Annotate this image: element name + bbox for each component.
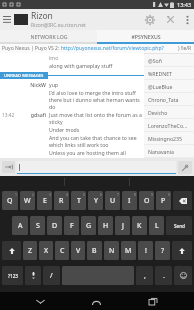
button[interactable]: 1	[2, 191, 18, 210]
button[interactable]: G	[81, 216, 96, 235]
button[interactable]: B	[87, 241, 102, 260]
button[interactable]: V	[71, 241, 85, 260]
staticText: Devicho	[148, 109, 168, 116]
button[interactable]: Send	[166, 216, 192, 235]
button[interactable]: ,	[136, 266, 153, 285]
button[interactable]: F	[64, 216, 79, 235]
button[interactable]: Missingno235	[144, 132, 194, 144]
staticText: L	[155, 221, 159, 231]
button[interactable]: 7	[105, 191, 120, 210]
button[interactable]: 2	[20, 191, 35, 210]
button[interactable]: N	[104, 241, 119, 260]
staticText: 9	[151, 192, 153, 197]
button[interactable]: D	[47, 216, 62, 235]
button[interactable]: L	[149, 216, 164, 235]
staticText: gdsafi	[22, 111, 46, 118]
button[interactable]: 3	[37, 191, 52, 210]
button[interactable]: Devicho	[144, 106, 194, 118]
staticText: @Soñ	[148, 57, 162, 64]
staticText: T	[77, 196, 81, 206]
staticText: Just move that list onto the forum as a	[49, 111, 142, 118]
button[interactable]: 8	[122, 191, 137, 210]
staticText: 2	[32, 192, 34, 197]
staticText: Chrono_Tata	[148, 96, 179, 103]
staticText: ?	[161, 246, 165, 256]
button[interactable]: ?123	[2, 266, 23, 285]
staticText: V	[76, 246, 81, 256]
button[interactable]: Nanavania	[144, 145, 194, 157]
button[interactable]: Close channel	[160, 9, 180, 30]
button[interactable]: 5	[71, 191, 86, 210]
button[interactable]: H	[98, 216, 113, 235]
button[interactable]: More options	[180, 9, 194, 30]
button[interactable]: Z	[23, 241, 37, 260]
button[interactable]: Shift	[2, 241, 21, 260]
button[interactable]: NETWORK LOG	[0, 30, 97, 42]
button[interactable]: Puyo Nexus | Puyo VS 2:	[0, 44, 194, 53]
button[interactable]: Emoji	[174, 266, 192, 285]
staticText: Rizon	[31, 10, 53, 22]
staticText: 6	[100, 192, 102, 197]
button[interactable]: 0	[156, 191, 171, 210]
button[interactable]: Channel settings	[140, 9, 160, 30]
button[interactable]: Home	[80, 292, 112, 310]
button[interactable]: Hide keyboard	[24, 292, 56, 310]
staticText: 4	[66, 192, 68, 197]
button[interactable]: .	[155, 266, 172, 285]
button[interactable]: @Soñ	[144, 54, 194, 66]
button[interactable]: J	[115, 216, 130, 235]
button[interactable]: X	[39, 241, 53, 260]
staticText: I	[128, 196, 131, 206]
staticText: U	[110, 196, 116, 206]
staticText: ) !le/R	[178, 45, 192, 52]
button[interactable]: Voice input	[25, 266, 41, 285]
button[interactable]: /	[43, 266, 60, 285]
button[interactable]: M	[121, 241, 136, 260]
staticText: 13:43	[177, 1, 192, 8]
button[interactable]: Shift	[172, 241, 192, 260]
staticText: !	[145, 246, 147, 256]
staticText: And you can take that chance to see	[49, 134, 137, 141]
staticText: J	[122, 221, 124, 231]
staticText: G	[86, 221, 92, 231]
button[interactable]: #PSYNEXUS	[97, 30, 194, 42]
button[interactable]: !	[138, 241, 153, 260]
button[interactable]: Open navigation drawer	[0, 9, 14, 30]
staticText: there but i dunno what hernan wants to	[49, 96, 143, 103]
staticText: #PSYNEXUS	[131, 33, 161, 40]
button[interactable]: S	[30, 216, 45, 235]
staticText: X	[44, 246, 49, 256]
button[interactable]: %REDNET	[144, 67, 194, 79]
button[interactable]: 9	[139, 191, 154, 210]
button[interactable]: Recent apps	[137, 292, 169, 310]
staticText: UNREAD MESSAGES	[4, 73, 44, 79]
button[interactable]: Tab complete	[2, 161, 15, 173]
button[interactable]: Attach	[178, 161, 192, 174]
button[interactable]: 4	[54, 191, 69, 210]
staticText: imo	[49, 54, 59, 61]
staticText: C	[60, 246, 65, 256]
button[interactable]: Backspace	[173, 191, 192, 210]
button[interactable]: A	[12, 216, 28, 235]
button[interactable]: K	[132, 216, 147, 235]
staticText: ?123	[8, 273, 18, 279]
button[interactable]	[17, 161, 176, 174]
button[interactable]: 6	[88, 191, 103, 210]
button[interactable]: LorenzoTheCo...	[144, 119, 194, 131]
button[interactable]: Chrono_Tata	[144, 93, 194, 105]
staticText: A	[18, 221, 23, 231]
staticText: 1	[15, 192, 17, 197]
staticText: Y	[94, 196, 98, 206]
staticText: yup	[49, 81, 59, 88]
button[interactable]: ?	[155, 241, 170, 260]
staticText: 7	[117, 192, 119, 197]
button[interactable]: C	[55, 241, 69, 260]
staticText: /	[50, 271, 53, 281]
staticText: S	[36, 221, 40, 231]
button[interactable]: @LueBlue	[144, 80, 194, 92]
